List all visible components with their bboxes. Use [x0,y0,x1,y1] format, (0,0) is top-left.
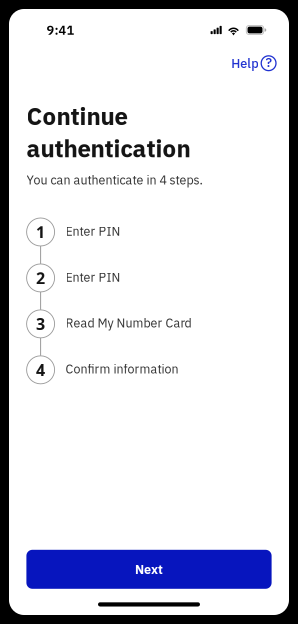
staticText: 4 [36,359,45,381]
button[interactable]: Help [226,50,281,76]
staticText: 9:41 [46,22,74,38]
staticText: 2 [36,267,45,289]
staticText: Next [135,561,163,578]
staticText: 3 [36,313,45,335]
staticText: ? [266,53,272,71]
staticText: 1 [36,221,45,243]
staticText: You can authenticate in 4 steps. [27,172,203,188]
staticText: Continue authentication [27,100,191,164]
staticText: Enter PIN [66,269,121,285]
staticText: Help [231,55,258,71]
button[interactable]: Next [26,550,272,589]
staticText: Read My Number Card [66,315,192,331]
staticText: Confirm information [66,361,179,377]
staticText: Enter PIN [66,223,121,239]
